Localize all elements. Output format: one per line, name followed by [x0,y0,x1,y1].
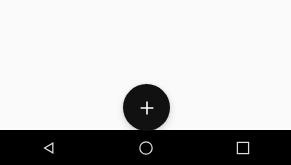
button[interactable]: Recent apps [194,130,291,165]
button[interactable]: Back [0,130,97,165]
button[interactable]: Add [123,84,170,131]
button[interactable]: Home [97,130,194,165]
